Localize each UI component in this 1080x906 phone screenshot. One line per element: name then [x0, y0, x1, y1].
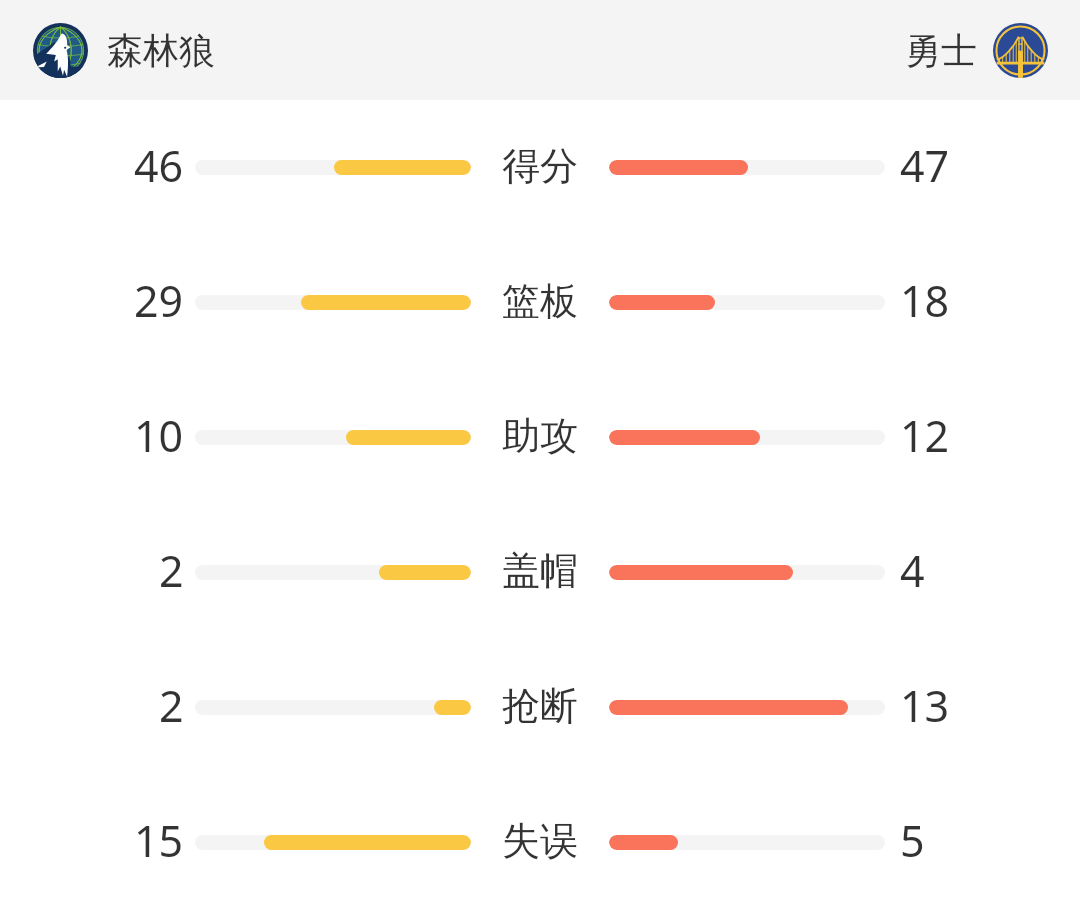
- staticText: 15: [134, 811, 184, 870]
- staticText: 森林狼: [107, 28, 215, 73]
- other: 勇士队徽: [993, 23, 1048, 78]
- staticText: 13: [900, 676, 950, 735]
- staticText: 29: [134, 271, 184, 330]
- staticText: 47: [900, 136, 950, 195]
- staticText: 得分: [502, 142, 578, 190]
- other: 森林狼队徽: [33, 23, 88, 78]
- staticText: 18: [900, 271, 950, 330]
- button[interactable]: 15: [0, 775, 1080, 906]
- staticText: 5: [900, 811, 925, 870]
- staticText: 盖帽: [502, 547, 578, 595]
- staticText: 勇士: [905, 28, 977, 73]
- staticText: 助攻: [502, 412, 578, 460]
- button[interactable]: 29: [0, 235, 1080, 370]
- button[interactable]: 勇士: [885, 0, 1080, 100]
- staticText: 10: [134, 406, 184, 465]
- staticText: 2: [159, 676, 184, 735]
- staticText: 篮板: [502, 277, 578, 325]
- staticText: 4: [900, 541, 925, 600]
- staticText: 12: [900, 406, 950, 465]
- button[interactable]: 2: [0, 505, 1080, 640]
- button[interactable]: 2: [0, 640, 1080, 775]
- staticText: 失误: [502, 817, 578, 865]
- staticText: 2: [159, 541, 184, 600]
- button[interactable]: 森林狼队徽: [0, 0, 235, 100]
- staticText: 46: [134, 136, 184, 195]
- button[interactable]: 46: [0, 100, 1080, 235]
- button[interactable]: 10: [0, 370, 1080, 505]
- staticText: 抢断: [502, 682, 578, 730]
